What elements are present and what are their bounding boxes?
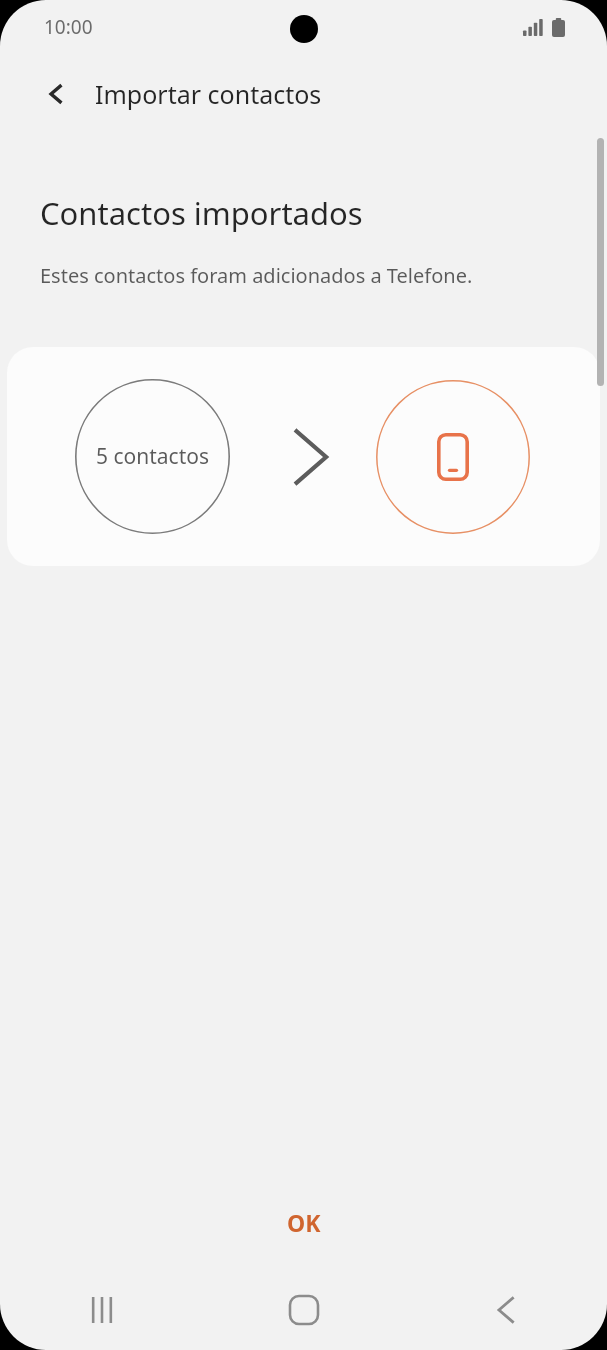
staticText: Importar contactos (95, 77, 322, 111)
staticText: Contactos importados (40, 192, 363, 234)
button[interactable]: Home (203, 1270, 405, 1350)
staticText: OK (287, 1207, 321, 1238)
staticText: 5 contactos (96, 442, 210, 471)
button[interactable]: 5 contactos (7, 347, 600, 566)
button[interactable]: Back (405, 1270, 607, 1350)
button[interactable]: Recent apps (0, 1270, 203, 1350)
staticText: 10:00 (44, 14, 93, 40)
staticText: Estes contactos foram adicionados a Tele… (40, 262, 473, 289)
button[interactable]: Back (28, 66, 84, 122)
button[interactable]: OK (0, 1174, 607, 1270)
